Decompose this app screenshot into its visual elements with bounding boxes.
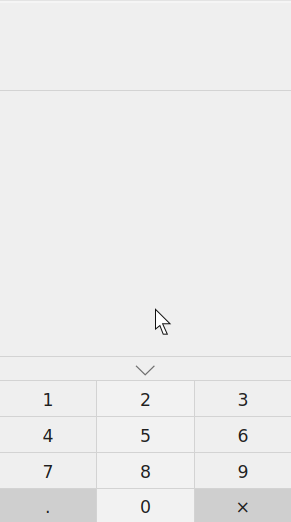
button[interactable]: 3 <box>195 381 291 416</box>
button[interactable]: . <box>0 489 96 522</box>
staticText: × <box>235 497 250 517</box>
staticText: 9 <box>237 462 248 482</box>
staticText: 1 <box>42 390 53 410</box>
button[interactable]: 9 <box>195 453 291 488</box>
staticText: 7 <box>42 462 53 482</box>
button[interactable]: 6 <box>195 417 291 452</box>
staticText: 8 <box>140 462 151 482</box>
button[interactable]: Hide keyboard <box>0 357 291 380</box>
button[interactable]: 0 <box>97 489 194 522</box>
staticText: 0 <box>140 497 151 517</box>
staticText: 6 <box>237 426 248 446</box>
button[interactable]: 5 <box>97 417 194 452</box>
button[interactable]: 2 <box>97 381 194 416</box>
button[interactable]: 1 <box>0 381 96 416</box>
staticText: 2 <box>140 390 151 410</box>
button[interactable]: 7 <box>0 453 96 488</box>
staticText: 3 <box>237 390 248 410</box>
button[interactable]: 4 <box>0 417 96 452</box>
button[interactable]: × <box>195 489 291 522</box>
button[interactable]: 8 <box>97 453 194 488</box>
staticText: 4 <box>42 426 53 446</box>
staticText: . <box>45 497 51 517</box>
staticText: 5 <box>140 426 151 446</box>
